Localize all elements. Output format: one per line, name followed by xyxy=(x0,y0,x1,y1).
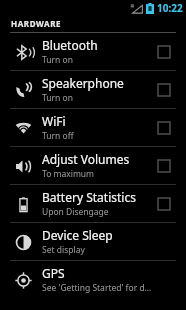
button[interactable]: Battery Statistics xyxy=(0,185,186,222)
staticText: Turn on xyxy=(42,54,73,66)
button[interactable]: Toggle Adjust Volumes xyxy=(152,154,176,178)
staticText: HARDWARE xyxy=(11,18,62,29)
staticText: See 'Getting Started' for details xyxy=(42,282,152,294)
button[interactable]: Toggle WiFi xyxy=(152,116,176,140)
button[interactable]: Toggle Bluetooth xyxy=(152,40,176,64)
button[interactable]: Toggle Speakerphone xyxy=(152,78,176,102)
staticText: Device Sleep xyxy=(42,227,113,243)
button[interactable]: Bluetooth xyxy=(0,33,186,70)
staticText: Turn on xyxy=(42,92,73,104)
button[interactable]: Toggle Battery Statistics xyxy=(152,192,176,216)
button[interactable]: WiFi xyxy=(0,109,186,146)
staticText: WiFi xyxy=(42,113,66,129)
staticText: Turn off xyxy=(42,130,74,142)
button[interactable]: Device Sleep xyxy=(0,223,186,260)
staticText: Speakerphone xyxy=(42,75,124,91)
staticText: Adjust Volumes xyxy=(42,151,130,167)
staticText: Battery Statistics xyxy=(42,189,136,205)
button[interactable]: Adjust Volumes xyxy=(0,147,186,184)
button[interactable]: Speakerphone xyxy=(0,71,186,108)
staticText: Bluetooth xyxy=(42,37,98,53)
staticText: Upon Disengage xyxy=(42,206,109,218)
staticText: Set display xyxy=(42,244,85,256)
staticText: GPS xyxy=(42,265,65,281)
button[interactable]: GPS xyxy=(0,261,186,298)
staticText: To maximum xyxy=(42,168,95,180)
staticText: 10:22 xyxy=(157,1,183,15)
